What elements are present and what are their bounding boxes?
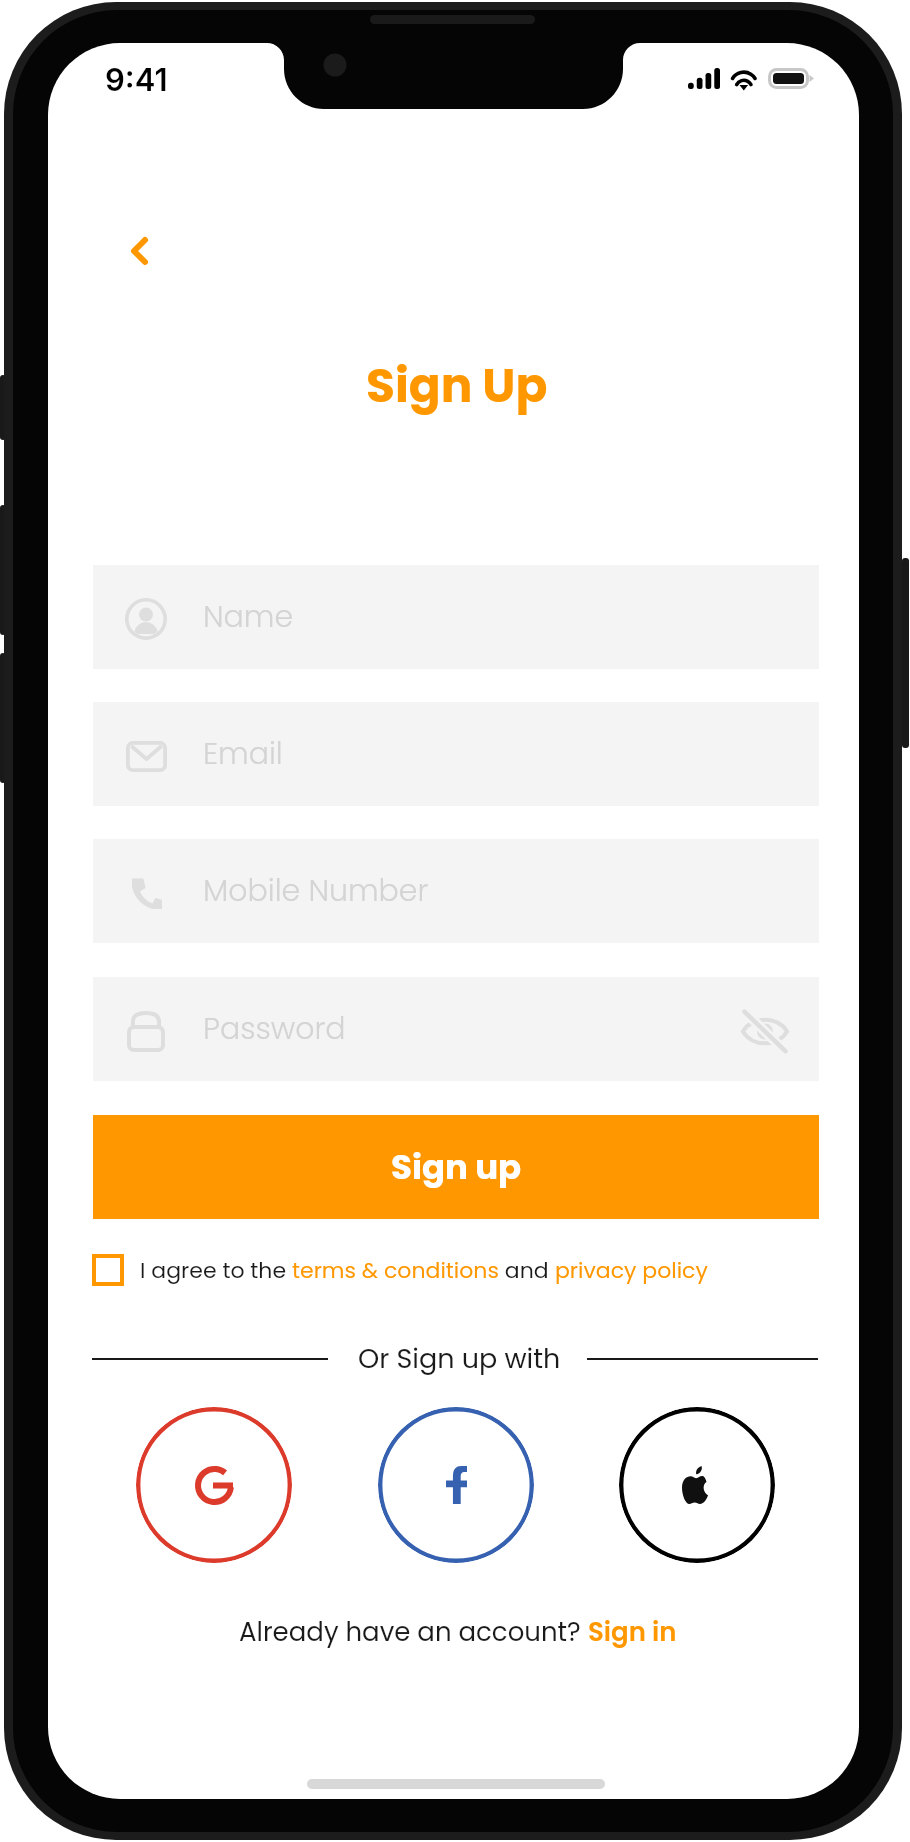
- button[interactable]: Email: [93, 702, 819, 806]
- button[interactable]: Sign up with Google: [136, 1407, 292, 1563]
- button[interactable]: Sign up with Facebook: [378, 1407, 534, 1563]
- button[interactable]: terms & conditions: [292, 1255, 499, 1286]
- button[interactable]: Sign up with Apple: [619, 1407, 775, 1563]
- staticText: and: [499, 1255, 555, 1286]
- staticText: 9:41: [105, 61, 168, 99]
- staticText: Already have an account?: [239, 1614, 588, 1650]
- button[interactable]: Mobile Number: [93, 839, 819, 943]
- button[interactable]: privacy policy: [555, 1255, 708, 1286]
- button[interactable]: I agree checkbox: [90, 1252, 126, 1288]
- button[interactable]: Already have an account?: [239, 1614, 677, 1650]
- staticText: Sign in: [588, 1614, 677, 1650]
- button[interactable]: Name: [93, 565, 819, 669]
- staticText: Mobile Number: [203, 870, 429, 912]
- staticText: Sign up: [391, 1143, 522, 1191]
- staticText: Sign Up: [366, 353, 548, 419]
- button[interactable]: Toggle password visibility: [734, 1000, 796, 1062]
- button[interactable]: Password: [93, 977, 819, 1081]
- staticText: Or Sign up with: [358, 1340, 561, 1378]
- button[interactable]: Sign up: [93, 1115, 819, 1219]
- staticText: I agree to the: [140, 1255, 292, 1286]
- staticText: Name: [203, 596, 294, 638]
- staticText: Password: [203, 1008, 346, 1050]
- staticText: Email: [203, 733, 283, 775]
- button[interactable]: Back: [103, 215, 175, 287]
